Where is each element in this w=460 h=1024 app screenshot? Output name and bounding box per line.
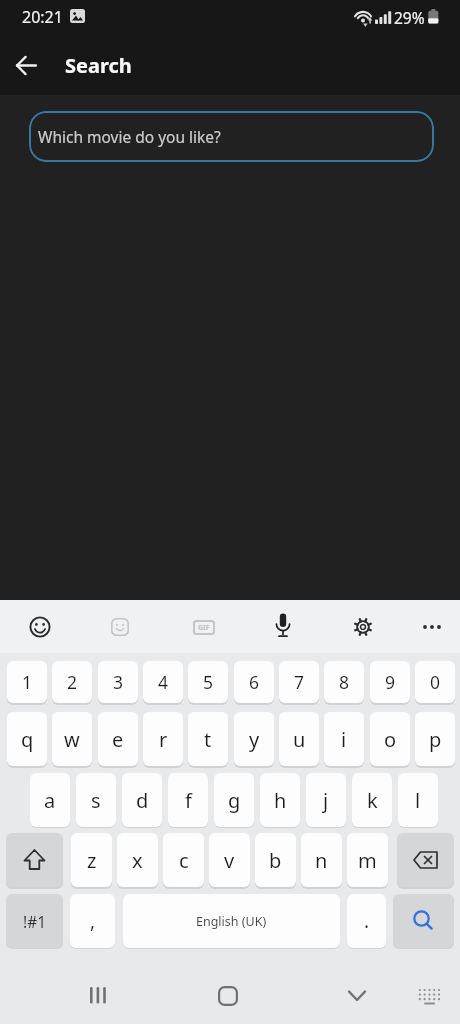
staticText: 3	[113, 670, 124, 694]
staticText: e	[112, 726, 124, 753]
button[interactable]: f	[168, 773, 208, 827]
button[interactable]	[6, 833, 63, 887]
button[interactable]: d	[122, 773, 162, 827]
button[interactable]: p	[415, 712, 455, 766]
staticText: f	[185, 787, 192, 814]
button[interactable]: x	[117, 833, 158, 887]
staticText: 4	[158, 670, 169, 694]
staticText: .	[364, 908, 370, 934]
staticText: 2	[67, 670, 78, 694]
staticText: g	[228, 787, 241, 814]
staticText: h	[274, 787, 287, 814]
staticText: !#1	[23, 911, 47, 932]
staticText: u	[293, 726, 306, 753]
button[interactable]: r	[143, 712, 183, 766]
button[interactable]	[418, 988, 441, 1006]
button[interactable]: Which movie do you like?	[29, 111, 434, 162]
staticText: v	[224, 847, 235, 874]
staticText: a	[44, 787, 56, 814]
button[interactable]: u	[279, 712, 319, 766]
button[interactable]: 5	[188, 661, 228, 703]
button[interactable]	[397, 833, 454, 887]
staticText: 1	[22, 670, 33, 694]
button[interactable]: 4	[143, 661, 183, 703]
button[interactable]	[29, 616, 51, 638]
staticText: 0	[430, 670, 441, 694]
staticText: 5	[203, 670, 214, 694]
button[interactable]: a	[30, 773, 70, 827]
staticText: Search	[65, 52, 132, 79]
staticText: r	[159, 726, 168, 753]
staticText: z	[87, 847, 97, 874]
button[interactable]: i	[324, 712, 364, 766]
staticText: p	[429, 726, 442, 753]
staticText: q	[21, 726, 34, 753]
button[interactable]: q	[7, 712, 47, 766]
button[interactable]: z	[71, 833, 112, 887]
staticText: m	[358, 847, 377, 874]
button[interactable]	[218, 986, 238, 1006]
button[interactable]: 3	[98, 661, 138, 703]
button[interactable]	[123, 894, 340, 948]
button[interactable]: GIF	[193, 620, 215, 635]
button[interactable]: v	[209, 833, 250, 887]
staticText: 6	[249, 670, 260, 694]
staticText: b	[269, 847, 282, 874]
staticText: n	[315, 847, 328, 874]
button[interactable]: w	[52, 712, 92, 766]
staticText: x	[132, 847, 143, 874]
button[interactable]	[352, 616, 374, 638]
button[interactable]: ,	[70, 894, 115, 948]
button[interactable]: n	[301, 833, 342, 887]
button[interactable]: 9	[370, 661, 410, 703]
staticText: 20:21	[22, 6, 63, 28]
staticText: l	[415, 787, 421, 814]
staticText: k	[367, 787, 378, 814]
button[interactable]	[348, 990, 366, 1002]
button[interactable]: 1	[7, 661, 47, 703]
button[interactable]	[90, 987, 106, 1004]
staticText: 9	[385, 670, 396, 694]
button[interactable]: l	[398, 773, 438, 827]
staticText: English (UK)	[196, 913, 267, 930]
staticText: GIF	[198, 623, 210, 633]
button[interactable]: y	[234, 712, 274, 766]
button[interactable]: e	[98, 712, 138, 766]
button[interactable]: t	[188, 712, 228, 766]
staticText: s	[91, 787, 101, 814]
button[interactable]: b	[255, 833, 296, 887]
button[interactable]	[421, 622, 443, 632]
button[interactable]: k	[352, 773, 392, 827]
button[interactable]	[273, 613, 293, 640]
button[interactable]: 7	[279, 661, 319, 703]
staticText: w	[64, 726, 80, 753]
button[interactable]: .	[347, 894, 386, 948]
staticText: ,	[90, 908, 96, 934]
staticText: Which movie do you like?	[38, 126, 221, 147]
button[interactable]: !#1	[6, 894, 63, 948]
staticText: o	[384, 726, 397, 753]
button[interactable]: h	[260, 773, 300, 827]
button[interactable]: 6	[234, 661, 274, 703]
button[interactable]: 2	[52, 661, 92, 703]
button[interactable]: j	[306, 773, 346, 827]
staticText: c	[179, 847, 189, 874]
staticText: 7	[294, 670, 305, 694]
button[interactable]: 8	[324, 661, 364, 703]
staticText: 8	[339, 670, 350, 694]
staticText: 29%	[394, 7, 425, 28]
button[interactable]	[15, 55, 38, 76]
button[interactable]: m	[347, 833, 388, 887]
staticText: t	[204, 726, 212, 753]
button[interactable]: c	[163, 833, 204, 887]
button[interactable]: o	[370, 712, 410, 766]
button[interactable]: g	[214, 773, 254, 827]
button[interactable]	[111, 618, 129, 636]
button[interactable]: 0	[415, 661, 455, 703]
staticText: j	[323, 787, 329, 814]
button[interactable]	[393, 894, 454, 948]
staticText: y	[249, 726, 260, 753]
staticText: d	[136, 787, 149, 814]
staticText: i	[341, 726, 347, 753]
button[interactable]: s	[76, 773, 116, 827]
